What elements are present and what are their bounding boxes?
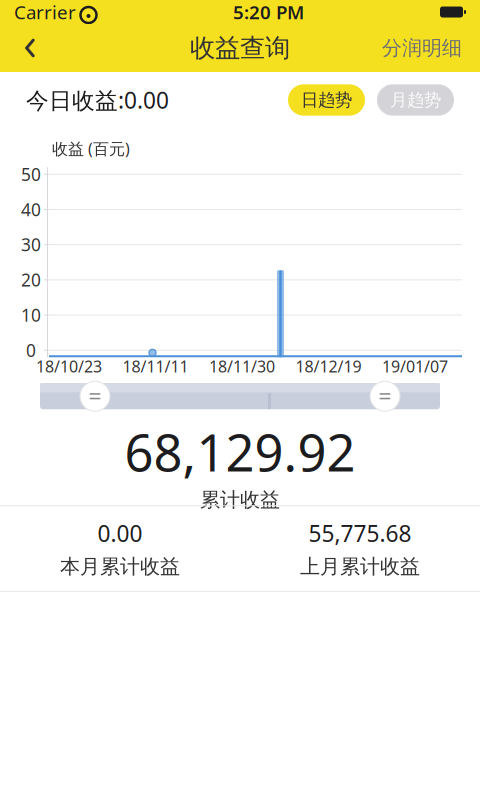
staticText: 0 (26, 339, 36, 362)
button[interactable]: 返回 (6, 24, 54, 72)
staticText: 5:20 PM (233, 0, 304, 24)
staticText (140, 381, 146, 411)
staticText: Carrier (14, 0, 76, 24)
staticText (29, 247, 35, 277)
staticText (30, 247, 36, 277)
staticText: 累计收益 (200, 488, 280, 512)
staticText: 18/11/11 (122, 356, 188, 377)
staticText: 今日收益:0.00 (26, 85, 169, 115)
staticText (452, 351, 458, 381)
staticText: 上月累计收益 (300, 554, 420, 579)
button[interactable]: 分润明细 (370, 24, 474, 72)
staticText: 18/12/19 (295, 356, 361, 377)
staticText: 0.00 (97, 518, 142, 548)
staticText (237, 362, 243, 392)
staticText: 收益 (百元) (52, 138, 130, 159)
staticText (237, 148, 243, 178)
staticText (75, 0, 81, 27)
staticText: 分润明细 (382, 36, 462, 60)
staticText: 20 (21, 268, 41, 291)
button[interactable]: 结束范围 (370, 381, 400, 411)
staticText: 19/01/07 (382, 356, 448, 377)
staticText: 10 (21, 303, 41, 326)
staticText: 55,775.68 (308, 518, 411, 548)
staticText: 日趋势 (301, 89, 352, 111)
staticText (237, 404, 243, 434)
staticText: 本月累计收益 (60, 554, 180, 579)
staticText: 18/10/23 (36, 356, 102, 377)
staticText: 月趋势 (390, 89, 441, 111)
staticText: 18/11/30 (209, 356, 275, 377)
staticText: 68,129.92 (124, 418, 355, 486)
staticText (24, 351, 30, 381)
button[interactable]: 日趋势 (288, 84, 365, 116)
button[interactable]: 起始范围 (80, 381, 110, 411)
button[interactable]: 月趋势 (377, 84, 454, 116)
staticText: 50 (21, 163, 41, 186)
staticText: 40 (21, 198, 41, 221)
staticText: 收益查询 (190, 32, 290, 63)
staticText: 30 (21, 233, 41, 256)
